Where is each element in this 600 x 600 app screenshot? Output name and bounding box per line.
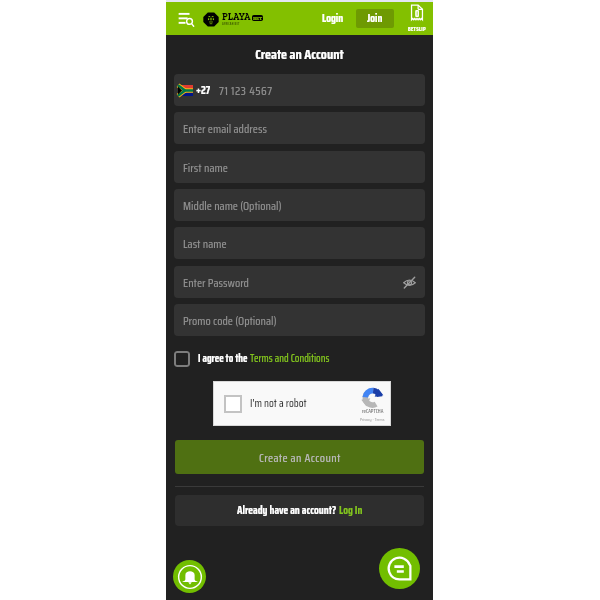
button[interactable]: Create an Account [175,440,424,474]
button[interactable]: Agree to terms checkbox [174,351,190,367]
staticText: PLAYA [222,11,251,22]
staticText: reCAPTCHA [362,407,384,416]
staticText: Login [322,10,344,27]
staticText: Privacy - Terms [360,416,385,423]
button[interactable]: Join [356,9,394,28]
button[interactable]: First name [174,151,425,183]
staticText: Promo code (Optional) [183,311,277,330]
staticText: Create an Account [166,43,433,65]
staticText: +27 [196,82,211,99]
staticText: Enter Password [183,273,249,292]
button[interactable]: Betslip [404,4,430,34]
button[interactable]: Login [317,6,349,31]
staticText: BETSLIP [408,25,426,34]
button[interactable]: Last name [174,227,425,259]
button[interactable]: Chat support [379,548,420,589]
button[interactable]: Enter Password [174,266,425,298]
staticText: I'm not a robot [250,395,307,412]
staticText: Log In [339,502,363,519]
staticText: Last name [183,234,227,253]
staticText: 71 123 4567 [219,81,273,100]
button[interactable]: +27 [174,74,425,106]
staticText: BET [253,15,263,21]
button[interactable]: Menu and search [176,9,196,29]
button[interactable]: Already have an account? [175,495,424,526]
staticText: Already have an account? [237,502,339,519]
staticText: I agree to the [198,350,250,367]
button[interactable]: Notifications [173,560,206,593]
staticText: AFRICAN BET [222,21,240,26]
staticText: Middle name (Optional) [183,196,282,215]
button[interactable]: Middle name (Optional) [174,189,425,221]
staticText: 0 [415,7,420,21]
staticText: Join [367,10,383,27]
button[interactable]: Enter email address [174,112,425,144]
staticText: Terms and Conditions [250,350,330,367]
staticText: Create an Account [259,448,341,467]
button[interactable]: I'm not a robot [213,381,391,426]
staticText: Enter email address [183,119,267,138]
button[interactable]: I agree to the [198,350,330,367]
staticText: First name [183,158,228,177]
button[interactable]: Promo code (Optional) [174,304,425,336]
